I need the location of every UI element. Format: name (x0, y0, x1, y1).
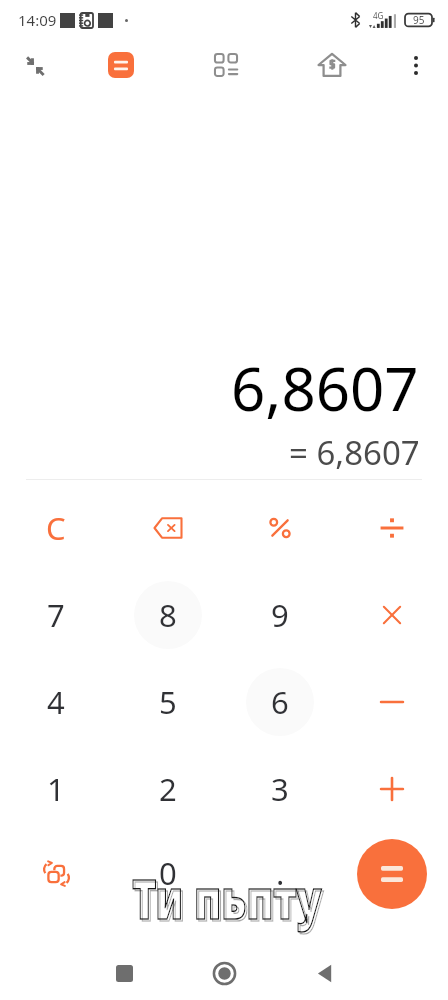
button[interactable]: Divide (336, 485, 448, 571)
button[interactable]: 3 (224, 746, 336, 832)
staticText: = 6,8607 (289, 430, 420, 475)
button[interactable]: Percent (224, 485, 336, 571)
button[interactable]: Conversions (202, 41, 250, 89)
button[interactable]: Unit converter (0, 830, 112, 916)
staticText: 9 (271, 594, 289, 636)
button[interactable]: . (224, 830, 336, 916)
button[interactable]: 8 (112, 572, 224, 658)
staticText: 14:09 (18, 10, 57, 30)
button[interactable]: Minus (336, 659, 448, 745)
staticText: 8 (159, 594, 177, 636)
button[interactable]: 5 (112, 659, 224, 745)
staticText: 6,8607 (231, 347, 419, 429)
button[interactable]: Recents (92, 946, 156, 1000)
button[interactable]: More options (392, 41, 440, 89)
button[interactable]: Back (292, 946, 356, 1000)
button[interactable]: Equals (357, 839, 427, 909)
staticText: 4 (47, 681, 65, 723)
button[interactable]: 4 (0, 659, 112, 745)
button[interactable]: Backspace (112, 485, 224, 571)
staticText: 95 (413, 13, 425, 27)
button[interactable]: 7 (0, 572, 112, 658)
staticText: Ти пьпту (134, 862, 324, 937)
staticText: 1 (47, 768, 65, 810)
button[interactable]: 2 (112, 746, 224, 832)
button[interactable]: Collapse (11, 42, 59, 90)
button[interactable]: 6 (224, 659, 336, 745)
staticText: . (276, 852, 285, 894)
staticText: 2 (159, 768, 177, 810)
button[interactable]: Mortgage (308, 41, 356, 89)
button[interactable]: C (0, 485, 112, 571)
staticText: 3 (271, 768, 289, 810)
button[interactable]: 0 (112, 830, 224, 916)
staticText: 0 (159, 852, 177, 894)
staticText: 4G (373, 10, 384, 21)
button[interactable]: Home (192, 946, 256, 1000)
button[interactable]: Plus (336, 746, 448, 832)
button[interactable]: Calculator (97, 41, 145, 89)
staticText: C (46, 507, 66, 549)
staticText: 5 (159, 681, 177, 723)
staticText: 7 (47, 594, 65, 636)
button[interactable]: Multiply (336, 572, 448, 658)
staticText: 6 (271, 681, 289, 723)
staticText: Ти пьпту (132, 860, 322, 935)
button[interactable]: 1 (0, 746, 112, 832)
button[interactable]: 9 (224, 572, 336, 658)
